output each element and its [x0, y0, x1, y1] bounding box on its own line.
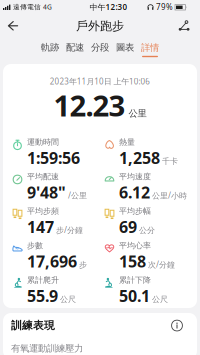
staticText: 訓練表現: [11, 319, 55, 332]
button[interactable]: 分段: [91, 42, 109, 57]
staticText: 公里/小時: [152, 190, 187, 201]
staticText: 中午12:30: [89, 2, 127, 12]
staticText: 運動時間: [27, 137, 59, 147]
staticText: 平均心率: [119, 241, 151, 251]
staticText: 69: [119, 216, 137, 237]
staticText: 1,258: [119, 147, 160, 168]
staticText: 公尺: [152, 294, 168, 304]
staticText: 有氧運動訓練壓力: [11, 342, 83, 354]
button[interactable]: Back: [4, 19, 20, 31]
staticText: 配速: [66, 42, 84, 53]
staticText: 詳情: [141, 42, 159, 53]
staticText: 熱量: [119, 137, 135, 147]
button[interactable]: 詳情: [141, 42, 159, 57]
button[interactable]: 配速: [66, 42, 84, 57]
staticText: 公里: [128, 108, 146, 119]
staticText: 17,696: [27, 251, 77, 272]
staticText: 1:59:56: [27, 147, 80, 168]
staticText: 平均配速: [27, 172, 59, 182]
staticText: 6.12: [119, 182, 150, 203]
staticText: 戶外跑步: [76, 19, 124, 33]
staticText: 步數: [27, 241, 43, 251]
staticText: 千卡: [162, 156, 178, 166]
staticText: 公尺: [60, 294, 76, 304]
staticText: 147: [27, 216, 54, 237]
button[interactable]: 圖表: [116, 42, 134, 57]
staticText: 平均速度: [119, 172, 151, 182]
button[interactable]: About training performance: [171, 320, 188, 332]
staticText: 158: [119, 251, 146, 272]
staticText: 軌跡: [41, 42, 59, 53]
staticText: 55.9: [27, 285, 58, 306]
staticText: 79%: [156, 2, 173, 12]
button[interactable]: Share: [177, 18, 191, 32]
staticText: /公里: [68, 190, 87, 201]
staticText: 12.23: [53, 86, 125, 125]
staticText: 9'48": [27, 182, 66, 203]
staticText: 公分: [139, 225, 155, 235]
staticText: 4G: [43, 3, 52, 11]
staticText: 累計爬升: [27, 275, 59, 285]
staticText: 步: [79, 260, 87, 270]
staticText: 平均步幅: [119, 206, 151, 216]
staticText: 累計下降: [119, 275, 151, 285]
staticText: 50.1: [119, 285, 150, 306]
staticText: 步/分鐘: [56, 225, 83, 235]
staticText: 遠傳電信: [13, 3, 41, 11]
staticText: 分段: [91, 42, 109, 53]
staticText: 2023年11月10日 上午10:06: [50, 76, 150, 87]
staticText: 平均步頻: [27, 206, 59, 216]
button[interactable]: 軌跡: [41, 42, 59, 57]
staticText: 次/分鐘: [148, 259, 175, 270]
staticText: 圖表: [116, 42, 134, 53]
